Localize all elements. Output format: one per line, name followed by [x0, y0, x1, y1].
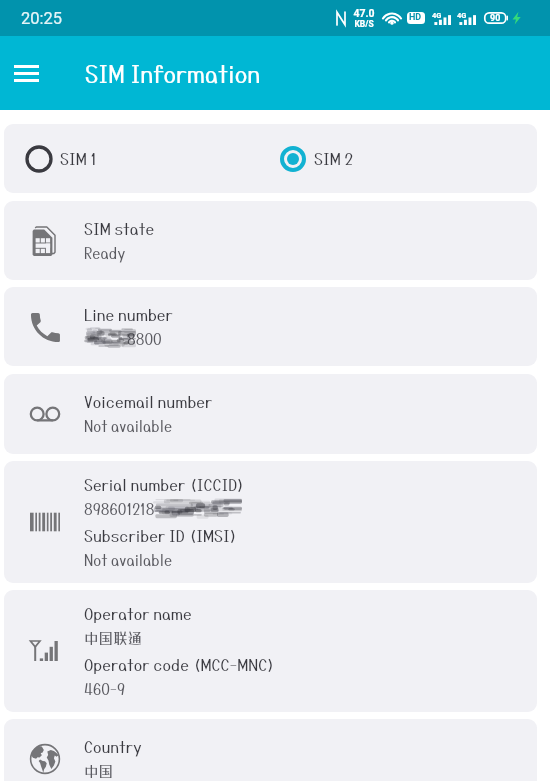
button[interactable]: SIM 1	[17, 124, 157, 193]
staticText: Serial number (ICCID)	[84, 476, 245, 494]
staticText: 90	[490, 13, 501, 24]
staticText: 8800	[84, 331, 162, 348]
staticText: KB/S	[354, 19, 374, 29]
staticText: 898601218	[84, 501, 155, 518]
staticText: Subscriber ID (IMSI)	[84, 527, 238, 545]
staticText: 中国联通	[84, 630, 142, 647]
staticText: SIM Information	[85, 60, 261, 87]
staticText: Country	[84, 738, 142, 756]
staticText: Operator code (MCC-MNC)	[84, 656, 275, 674]
button[interactable]: Serial number (ICCID)	[4, 461, 537, 583]
staticText: Not available	[84, 418, 173, 435]
button[interactable]: SIM state	[4, 201, 537, 280]
staticText: 中国	[84, 763, 113, 780]
button[interactable]: Open navigation menu	[0, 47, 52, 99]
staticText: Operator name	[84, 605, 192, 623]
staticText: 4G	[432, 11, 442, 20]
staticText: Ready	[84, 245, 126, 262]
staticText: 460-9	[84, 681, 126, 698]
staticText: HD	[409, 12, 422, 23]
staticText: 20:25	[21, 9, 63, 28]
staticText: 4G	[457, 11, 467, 20]
button[interactable]: Operator name	[4, 590, 537, 712]
staticText: 47.0	[353, 7, 375, 19]
staticText: Line number	[84, 306, 173, 324]
staticText: Voicemail number	[84, 393, 213, 411]
button[interactable]: SIM 1	[4, 124, 537, 193]
staticText: Not available	[84, 552, 173, 569]
staticText: SIM 1	[60, 150, 97, 168]
button[interactable]: Line number	[4, 287, 537, 366]
button[interactable]: Voicemail number	[4, 374, 537, 454]
staticText: SIM 2	[314, 150, 354, 168]
staticText: SIM state	[84, 220, 155, 238]
button[interactable]: Country	[4, 719, 537, 781]
button[interactable]: SIM 2	[271, 124, 411, 193]
